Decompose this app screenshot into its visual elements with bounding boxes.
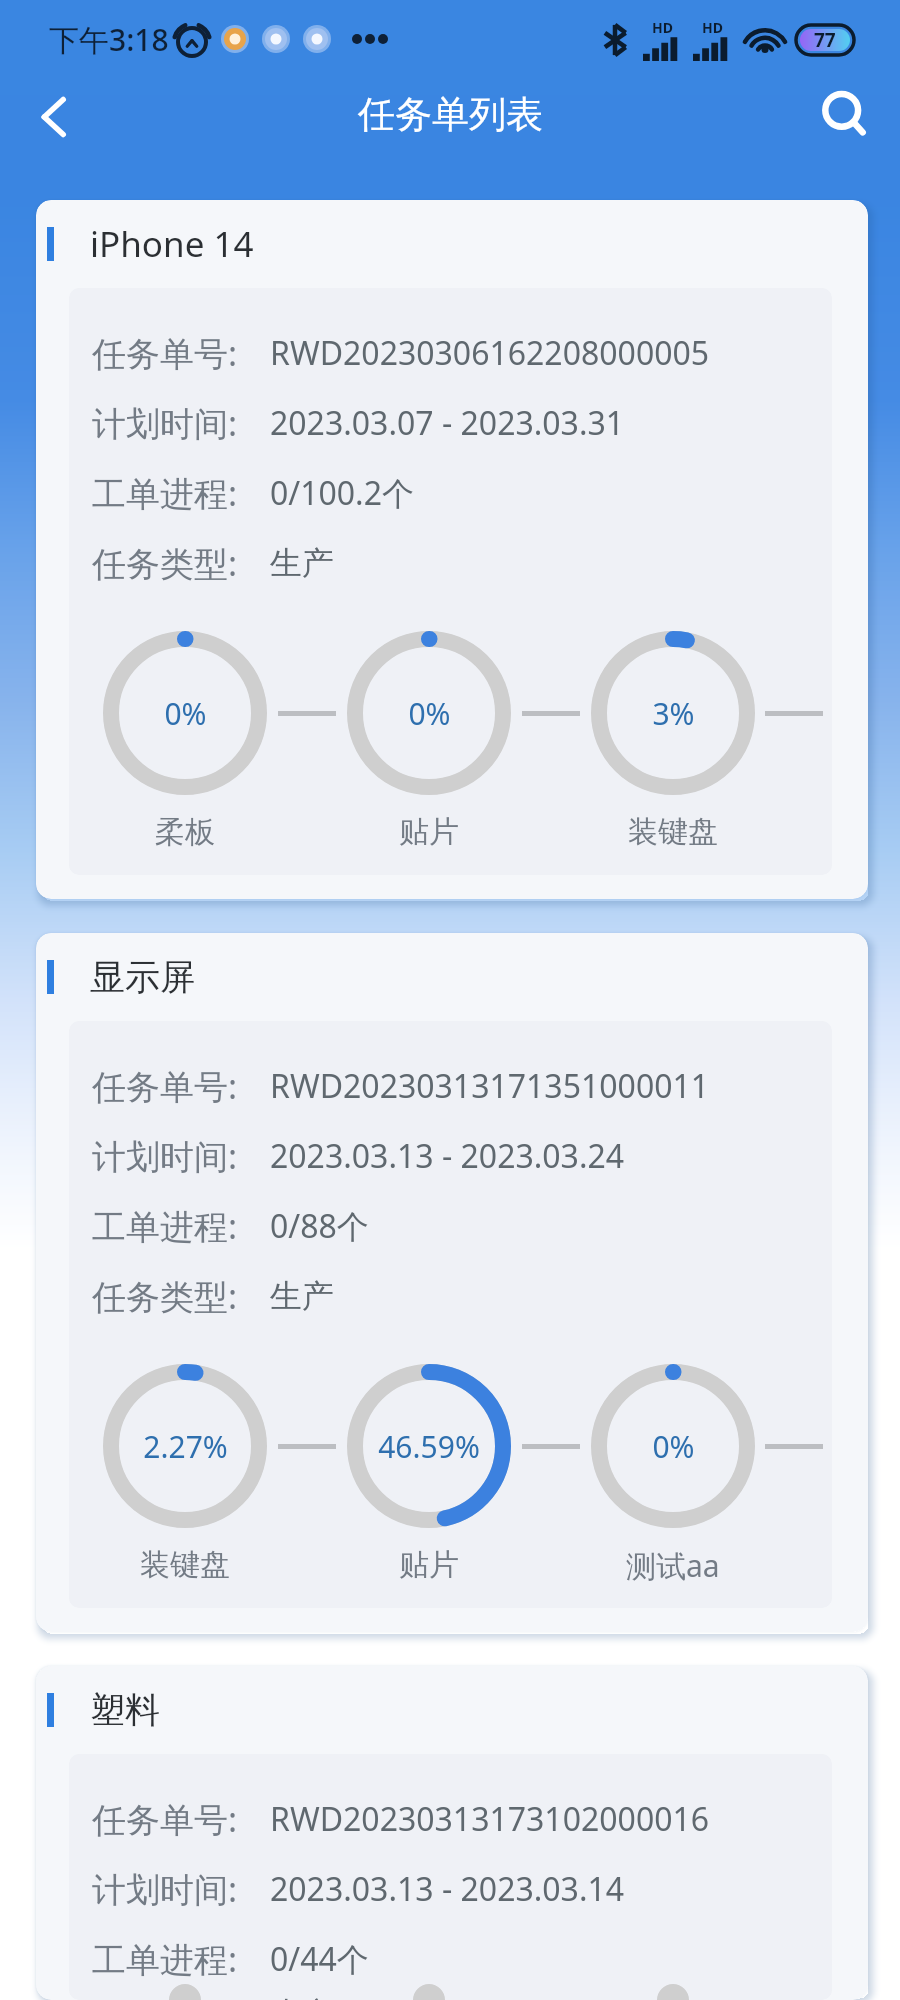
staticText: 下午3:18 xyxy=(49,19,169,60)
staticText: 0% xyxy=(164,693,207,734)
staticText: 贴片 xyxy=(399,1546,459,1584)
staticText: RWD20230313171351000011 xyxy=(270,1064,710,1108)
staticText: 工单进程: xyxy=(92,1203,238,1249)
staticText: 任务单号: xyxy=(92,1796,238,1842)
staticText: RWD20230306162208000005 xyxy=(270,331,710,375)
staticText: 3% xyxy=(652,693,695,734)
staticText: 2023.03.13 - 2023.03.14 xyxy=(270,1867,625,1911)
staticText: 任务单号: xyxy=(92,1063,238,1109)
staticText: 测试aa xyxy=(626,1545,720,1586)
staticText: 2023.03.07 - 2023.03.31 xyxy=(270,401,625,445)
staticText: 贴片 xyxy=(399,813,459,851)
staticText: 2.27% xyxy=(143,1426,228,1467)
staticText: 0/100.2个 xyxy=(270,471,415,515)
staticText: 装键盘 xyxy=(628,813,718,851)
button[interactable]: iPhone 14 xyxy=(36,200,868,899)
button[interactable]: 返回 xyxy=(25,87,85,147)
staticText: 2023.03.13 - 2023.03.24 xyxy=(270,1134,625,1178)
staticText: HD xyxy=(702,18,723,37)
staticText: 生产 xyxy=(270,1994,334,2000)
staticText: 0% xyxy=(652,1426,695,1467)
staticText: 0/88个 xyxy=(270,1204,369,1248)
staticText: 0% xyxy=(408,693,451,734)
staticText: RWD20230313173102000016 xyxy=(270,1797,710,1841)
staticText: 任务单号: xyxy=(92,330,238,376)
staticText: 77 xyxy=(814,27,836,53)
staticText: HD xyxy=(652,18,673,37)
staticText: 0/44个 xyxy=(270,1937,369,1981)
staticText: 任务类型: xyxy=(92,540,238,586)
button[interactable]: 搜索 xyxy=(816,84,882,150)
staticText: 生产 xyxy=(270,1276,334,1316)
staticText: 工单进程: xyxy=(92,470,238,516)
staticText: 计划时间: xyxy=(92,400,238,446)
staticText: 任务类型: xyxy=(92,1994,238,2000)
staticText: 装键盘 xyxy=(140,1546,230,1584)
staticText: 塑料 xyxy=(90,1688,160,1732)
staticText: 任务单列表 xyxy=(358,91,543,138)
staticText: 46.59% xyxy=(378,1426,480,1467)
staticText: 工单进程: xyxy=(92,1936,238,1982)
staticText: 显示屏 xyxy=(90,955,195,999)
staticText: 计划时间: xyxy=(92,1866,238,1912)
staticText: 柔板 xyxy=(155,813,215,851)
button[interactable]: 塑料 xyxy=(36,1666,868,2000)
button[interactable]: 显示屏 xyxy=(36,933,868,1632)
staticText: iPhone 14 xyxy=(90,220,254,268)
staticText: 任务类型: xyxy=(92,1273,238,1319)
staticText: 计划时间: xyxy=(92,1133,238,1179)
staticText: 生产 xyxy=(270,543,334,583)
